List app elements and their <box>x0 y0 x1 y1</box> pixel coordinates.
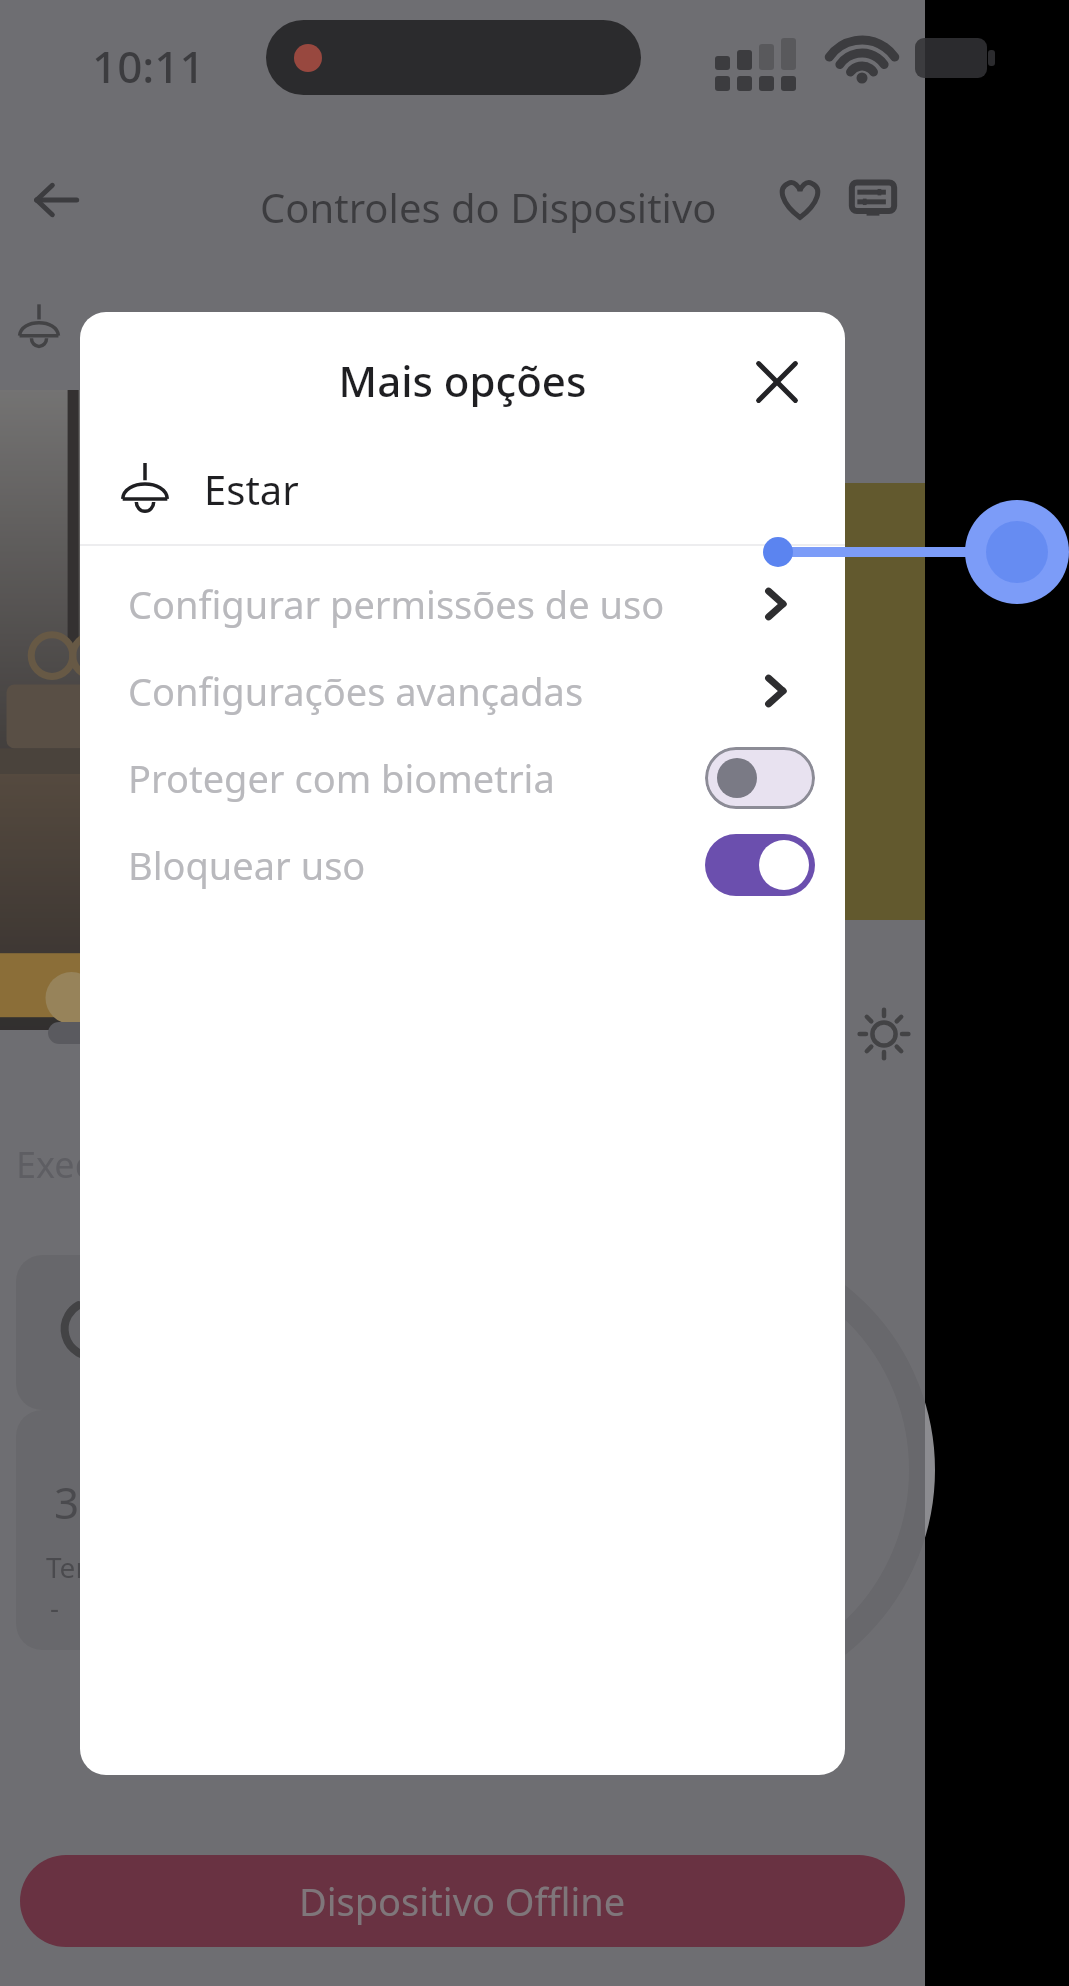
staticText: 10:11 <box>92 36 205 96</box>
button[interactable]: Back <box>16 160 96 240</box>
button[interactable]: Favorite <box>760 160 840 240</box>
button[interactable]: Close <box>735 340 819 424</box>
staticText: Configurar permissões de uso <box>128 578 665 630</box>
staticText: Temp <box>46 1548 119 1586</box>
staticText: Dispositivo Offline <box>299 1875 626 1927</box>
button[interactable]: Display settings <box>833 160 913 240</box>
button[interactable]: Configurar permissões de uso <box>80 560 845 647</box>
button[interactable]: Proteger com biometria <box>80 734 845 821</box>
button[interactable]: Bloquear uso <box>80 821 845 908</box>
staticText: Configurações avançadas <box>128 665 584 717</box>
staticText: - <box>50 1588 60 1626</box>
staticText: Mais opções <box>80 352 845 409</box>
button[interactable]: Dispositivo Offline <box>20 1855 905 1947</box>
staticText: Executar <box>16 1140 163 1189</box>
button[interactable]: Estar <box>80 434 845 544</box>
button[interactable]: Configurações avançadas <box>80 647 845 734</box>
staticText: Bloquear uso <box>128 839 366 891</box>
staticText: Controles do Dispositivo <box>260 180 717 234</box>
staticText: Estar <box>204 462 299 516</box>
staticText: Proteger com biometria <box>128 752 555 804</box>
staticText: 3s <box>54 1472 101 1532</box>
